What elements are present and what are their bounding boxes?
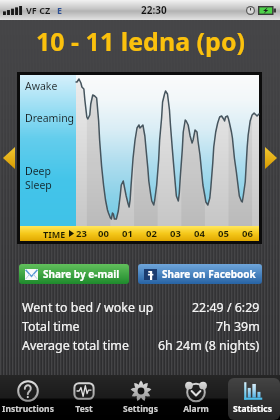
staticText: 04 [194, 227, 205, 240]
button[interactable]: Share by e-mail [19, 264, 129, 284]
staticText: 22:49 / 6:29 [192, 299, 260, 316]
staticText: 02 [146, 227, 157, 240]
staticText: 06 [242, 227, 253, 240]
staticText: Average total time [22, 337, 129, 354]
staticText: Statistics [233, 403, 272, 415]
staticText: TIME [43, 228, 66, 240]
button[interactable]: Share on Facebook [138, 264, 262, 284]
staticText: VF CZ [26, 4, 51, 16]
staticText: 22:30 [141, 3, 167, 17]
staticText: Share on Facebook [162, 267, 256, 281]
staticText: Total time [22, 318, 80, 335]
staticText: Dreaming [25, 111, 75, 125]
button[interactable]: Instructions [0, 375, 56, 420]
staticText: 7h 39m [216, 318, 260, 335]
staticText: Share by e-mail [43, 267, 120, 281]
staticText: E [57, 4, 63, 16]
staticText: Sleep [25, 178, 52, 192]
staticText: 6h 24m (8 nights) [158, 337, 260, 354]
button[interactable]: Statistics [224, 375, 280, 420]
staticText: Instructions [2, 403, 54, 415]
staticText: 05 [218, 227, 229, 240]
staticText: Alarm [183, 403, 209, 415]
staticText: 03 [170, 227, 181, 240]
staticText: Went to bed / woke up [22, 299, 154, 316]
staticText: 23 [76, 227, 87, 240]
button[interactable]: Awake [20, 75, 259, 241]
button[interactable]: Test [56, 375, 112, 420]
button[interactable]: Settings [112, 375, 168, 420]
button[interactable]: Previous night [3, 147, 15, 169]
staticText: 10 - 11 ledna (po) [36, 24, 245, 58]
staticText: 01 [122, 227, 133, 240]
staticText: Settings [123, 403, 158, 415]
button[interactable]: Next night [265, 147, 277, 169]
staticText: Test [75, 403, 93, 415]
button[interactable]: Alarm [168, 375, 224, 420]
staticText: Awake [25, 79, 58, 93]
staticText: Deep [25, 164, 51, 178]
staticText: 00 [98, 227, 109, 240]
